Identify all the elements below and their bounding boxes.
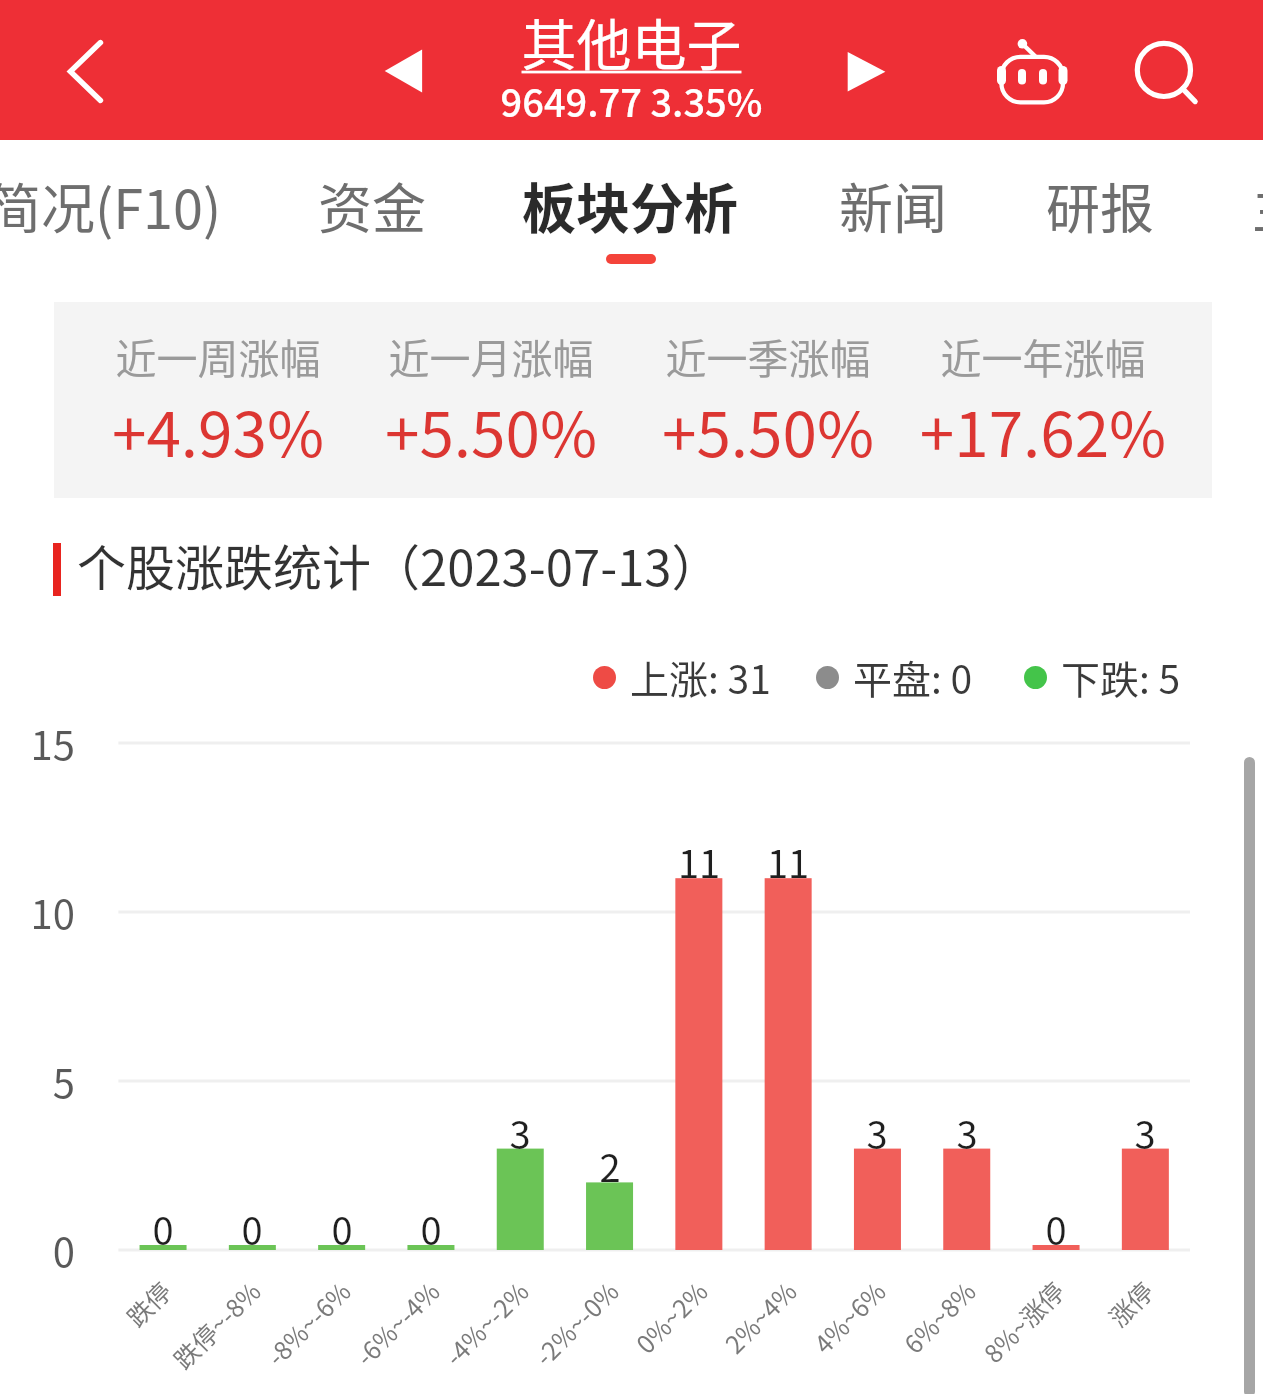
button[interactable]: Back bbox=[38, 24, 130, 116]
staticText: +4.93% bbox=[48, 385, 388, 475]
staticText: 2 bbox=[540, 1138, 680, 1193]
staticText: -2%~-0% bbox=[317, 1273, 625, 1394]
staticText: 简况(F10) bbox=[0, 166, 222, 244]
staticText: +5.50% bbox=[598, 385, 938, 475]
staticText: 新闻 bbox=[839, 166, 947, 244]
staticText: 近一年涨幅 bbox=[883, 326, 1203, 385]
staticText: 3 bbox=[807, 1105, 947, 1160]
staticText: 3 bbox=[1075, 1105, 1215, 1160]
button[interactable]: Previous sector bbox=[380, 45, 430, 95]
staticText: 主 bbox=[1252, 166, 1263, 244]
button[interactable]: 上涨: 31 bbox=[593, 649, 771, 705]
staticText: 0 bbox=[986, 1201, 1126, 1256]
staticText: 跌停~-8% bbox=[0, 1273, 267, 1394]
button[interactable]: 新闻 bbox=[839, 166, 947, 244]
staticText: -8%~-6% bbox=[49, 1273, 357, 1394]
staticText: 10 bbox=[3, 883, 75, 941]
staticText: 下跌: 5 bbox=[1061, 649, 1181, 705]
staticText: -4%~-2% bbox=[227, 1273, 535, 1394]
staticText: 0%~2% bbox=[406, 1273, 714, 1394]
staticText: 跌停 bbox=[0, 1273, 178, 1394]
staticText: 0 bbox=[361, 1201, 501, 1256]
button[interactable]: 主 bbox=[1252, 166, 1263, 244]
staticText: 9649.77 3.35% bbox=[0, 73, 1263, 128]
staticText: 0 bbox=[93, 1201, 233, 1256]
staticText: 15 bbox=[3, 714, 75, 772]
staticText: 板块分析 bbox=[522, 166, 738, 244]
staticText: 3 bbox=[897, 1105, 1037, 1160]
staticText: 4%~6% bbox=[584, 1273, 892, 1394]
staticText: 资金 bbox=[318, 166, 426, 244]
staticText: 研报 bbox=[1046, 166, 1154, 244]
staticText: 近一周涨幅 bbox=[58, 326, 378, 385]
staticText: 其他电子 bbox=[0, 1, 1263, 81]
staticText: 2%~4% bbox=[495, 1273, 803, 1394]
staticText: 近一月涨幅 bbox=[331, 326, 651, 385]
staticText: 3 bbox=[450, 1105, 590, 1160]
button[interactable]: 平盘: 0 bbox=[816, 649, 973, 705]
staticText: 11 bbox=[718, 834, 858, 889]
staticText: 近一季涨幅 bbox=[608, 326, 928, 385]
staticText: 6%~8% bbox=[674, 1273, 982, 1394]
staticText: 0 bbox=[182, 1201, 322, 1256]
staticText: 8%~涨停 bbox=[763, 1273, 1071, 1394]
staticText: 上涨: 31 bbox=[630, 649, 771, 705]
button[interactable]: 板块分析 bbox=[522, 166, 738, 244]
staticText: -6%~-4% bbox=[138, 1273, 446, 1394]
staticText: +17.62% bbox=[873, 385, 1213, 475]
button[interactable]: 研报 bbox=[1046, 166, 1154, 244]
staticText: 0 bbox=[272, 1201, 412, 1256]
staticText: 11 bbox=[629, 834, 769, 889]
button[interactable]: 资金 bbox=[318, 166, 426, 244]
staticText: 平盘: 0 bbox=[853, 649, 973, 705]
staticText: +5.50% bbox=[321, 385, 661, 475]
staticText: 涨停 bbox=[852, 1273, 1160, 1394]
staticText: 0 bbox=[3, 1221, 75, 1279]
button[interactable]: AI assistant bbox=[995, 36, 1073, 114]
button[interactable]: Search bbox=[1130, 33, 1206, 109]
staticText: 5 bbox=[3, 1052, 75, 1110]
button[interactable]: 简况(F10) bbox=[0, 166, 222, 244]
button[interactable]: Next sector bbox=[840, 45, 890, 95]
staticText: 个股涨跌统计（2023-07-13） bbox=[77, 529, 721, 600]
button[interactable]: 下跌: 5 bbox=[1024, 649, 1181, 705]
